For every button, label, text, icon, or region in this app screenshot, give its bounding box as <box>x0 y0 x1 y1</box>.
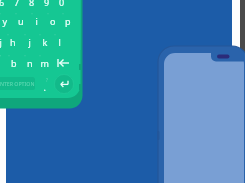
other: Keyboard and phone illustration <box>0 0 245 183</box>
button[interactable]: Phone preview <box>158 46 245 183</box>
button[interactable]: Backspace <box>56 56 74 70</box>
button[interactable]: Keyboard and phone illustration <box>0 0 245 183</box>
button[interactable]: Enter <box>52 76 72 96</box>
button[interactable]: Enter option <box>0 77 36 90</box>
